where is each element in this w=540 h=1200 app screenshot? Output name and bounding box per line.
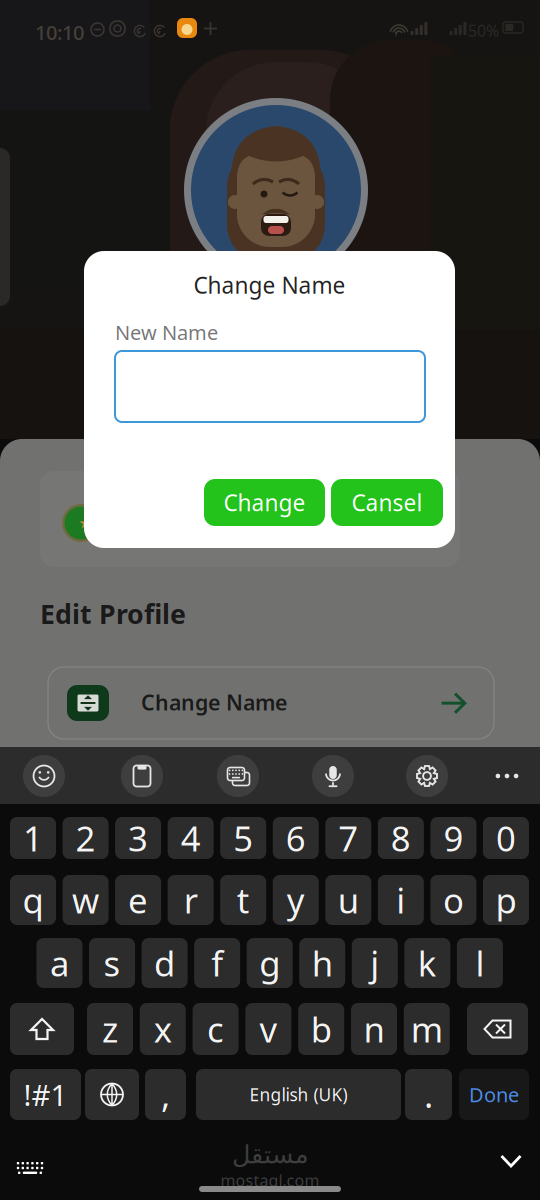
button[interactable]: Voice input <box>312 755 354 797</box>
button[interactable]: 0 <box>483 817 529 859</box>
button[interactable]: x <box>140 1003 186 1055</box>
staticText: 0 <box>496 815 516 861</box>
staticText: u <box>338 877 359 923</box>
staticText: 3 <box>128 815 148 861</box>
staticText: a <box>50 940 69 986</box>
button[interactable]: Cansel <box>331 479 443 526</box>
button[interactable]: z <box>87 1003 133 1055</box>
button[interactable]: . <box>405 1069 452 1120</box>
button[interactable]: y <box>273 875 319 925</box>
button[interactable]: q <box>10 875 56 925</box>
staticText: y <box>287 877 305 923</box>
button[interactable]: k <box>404 938 450 988</box>
staticText: , <box>161 1071 170 1117</box>
button[interactable]: d <box>142 938 188 988</box>
button[interactable]: 7 <box>325 817 371 859</box>
button[interactable]: Emoji <box>23 755 65 797</box>
staticText: o <box>443 877 464 923</box>
button[interactable]: 2 <box>62 817 108 859</box>
button[interactable]: 4 <box>168 817 214 859</box>
staticText: 4 <box>181 815 201 861</box>
staticText: c <box>207 1006 224 1052</box>
staticText: !#1 <box>23 1075 67 1114</box>
staticText: 8 <box>391 815 411 861</box>
button[interactable]: a <box>36 938 82 988</box>
staticText: d <box>154 940 175 986</box>
button[interactable]: Clipboard <box>121 755 163 797</box>
staticText: l <box>475 940 484 986</box>
button[interactable]: Shift <box>10 1003 74 1055</box>
button[interactable]: Change <box>204 479 325 526</box>
staticText: 10:10 <box>35 19 84 46</box>
button[interactable]: g <box>247 938 293 988</box>
button[interactable]: n <box>351 1003 397 1055</box>
staticText: . <box>424 1071 433 1117</box>
staticText: v <box>259 1006 277 1052</box>
button[interactable]: b <box>298 1003 344 1055</box>
button[interactable]: o <box>430 875 476 925</box>
button[interactable]: t <box>220 875 266 925</box>
staticText: x <box>154 1006 172 1052</box>
staticText: 9 <box>443 815 463 861</box>
staticText: r <box>184 877 198 923</box>
staticText: English (UK) <box>249 1083 347 1106</box>
staticText: 7 <box>338 815 358 861</box>
staticText: mostaql.com <box>220 1170 319 1191</box>
staticText: Change Name <box>193 270 345 300</box>
staticText: s <box>103 940 120 986</box>
button[interactable]: Delete <box>467 1003 528 1055</box>
button[interactable]: c <box>193 1003 239 1055</box>
button[interactable]: Change Name <box>48 667 494 739</box>
button[interactable]: 6 <box>273 817 319 859</box>
staticText: q <box>22 877 43 923</box>
staticText: ★ <box>78 514 92 532</box>
staticText: z <box>102 1006 118 1052</box>
button[interactable]: Settings <box>406 755 448 797</box>
button[interactable]: More <box>485 754 529 798</box>
staticText: g <box>259 940 280 986</box>
button[interactable]: j <box>352 938 398 988</box>
button[interactable]: 5 <box>220 817 266 859</box>
staticText: Done <box>469 1081 519 1108</box>
button[interactable]: r <box>168 875 214 925</box>
button[interactable]: u <box>325 875 371 925</box>
staticText: 50% <box>468 20 499 41</box>
button[interactable]: Keyboards <box>217 755 259 797</box>
button[interactable]: f <box>194 938 240 988</box>
staticText: p <box>495 877 516 923</box>
button[interactable]: , <box>145 1069 186 1120</box>
button[interactable]: Next keyboard <box>85 1069 139 1120</box>
staticText: 1 <box>23 815 43 861</box>
staticText: Cansel <box>351 487 422 517</box>
button[interactable]: l <box>457 938 503 988</box>
button[interactable]: m <box>404 1003 450 1055</box>
button[interactable]: 3 <box>115 817 161 859</box>
button[interactable]: v <box>245 1003 291 1055</box>
staticText: Edit Profile <box>40 596 186 631</box>
staticText: 2 <box>75 815 95 861</box>
button[interactable]: e <box>115 875 161 925</box>
button[interactable]: 8 <box>378 817 424 859</box>
staticText: b <box>311 1006 332 1052</box>
staticText: m <box>411 1006 443 1052</box>
button[interactable]: !#1 <box>10 1069 81 1120</box>
button[interactable]: Hide keyboard <box>489 1141 533 1181</box>
staticText: مستقل <box>231 1140 308 1169</box>
button[interactable]: p <box>483 875 529 925</box>
button[interactable]: English (UK) <box>196 1069 401 1120</box>
staticText: t <box>237 877 250 923</box>
staticText: n <box>363 1006 384 1052</box>
button[interactable]: w <box>62 875 108 925</box>
button[interactable]: h <box>299 938 345 988</box>
button[interactable]: s <box>89 938 135 988</box>
button[interactable]: Done <box>459 1069 529 1120</box>
staticText: w <box>72 877 99 923</box>
staticText: f <box>211 940 223 986</box>
staticText: h <box>312 940 333 986</box>
button[interactable]: i <box>378 875 424 925</box>
button[interactable]: 9 <box>430 817 476 859</box>
button[interactable]: 1 <box>10 817 56 859</box>
button[interactable]: Switch keyboard <box>8 1148 52 1188</box>
staticText: i <box>396 877 405 923</box>
staticText: e <box>128 877 148 923</box>
